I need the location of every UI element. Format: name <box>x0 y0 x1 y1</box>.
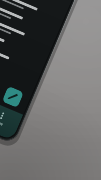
button[interactable] <box>0 33 37 77</box>
button[interactable] <box>0 45 31 90</box>
button[interactable] <box>0 7 48 51</box>
button[interactable] <box>0 0 64 13</box>
button[interactable] <box>0 0 59 26</box>
button[interactable] <box>0 20 42 64</box>
button[interactable] <box>0 0 53 38</box>
staticText: More <box>0 118 4 126</box>
button[interactable]: More <box>0 108 11 129</box>
button[interactable]: Compose <box>2 86 24 108</box>
